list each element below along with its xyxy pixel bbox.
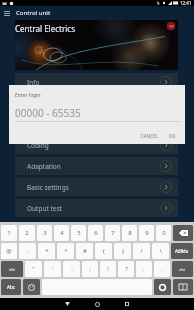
staticText: /	[140, 247, 143, 255]
staticText: Coding	[27, 141, 49, 150]
button[interactable]: #	[76, 243, 93, 259]
button[interactable]: Fault memory	[15, 94, 178, 112]
staticText: (	[103, 247, 105, 255]
staticText: \	[159, 247, 162, 255]
button[interactable]: (	[95, 243, 112, 259]
button[interactable]: OK	[166, 130, 179, 142]
button[interactable]: )	[114, 243, 131, 259]
staticText: Basic settings	[27, 183, 69, 192]
staticText: +	[64, 247, 68, 255]
button[interactable]: Symbols	[172, 261, 193, 277]
button[interactable]: 2	[19, 225, 35, 241]
staticText: ?	[125, 265, 128, 273]
staticText: ;	[89, 265, 91, 273]
staticText: =\<	[179, 267, 186, 272]
button[interactable]: "	[25, 261, 42, 277]
button[interactable]: '	[44, 261, 61, 277]
staticText: Adaptation	[27, 162, 61, 171]
staticText: "	[32, 265, 35, 273]
button[interactable]: 9	[139, 225, 154, 241]
button[interactable]: ,	[136, 261, 152, 277]
button[interactable]: =\<	[1, 261, 23, 277]
staticText: )	[122, 247, 124, 255]
button[interactable]: 7	[105, 225, 120, 241]
button[interactable]: +	[57, 243, 74, 259]
button[interactable]: Open navigation menu	[0, 6, 13, 20]
button[interactable]: Adaptation	[15, 157, 178, 175]
staticText: 00000 - 65535	[15, 106, 81, 120]
button[interactable]: Keyboard settings	[154, 279, 171, 295]
button[interactable]: Output test	[15, 199, 178, 217]
button[interactable]: Backspace	[173, 225, 193, 241]
button[interactable]: Info	[15, 73, 178, 91]
staticText: :	[71, 265, 73, 273]
staticText: 6	[94, 229, 98, 237]
staticText: .	[161, 265, 163, 273]
button[interactable]: 4	[54, 225, 69, 241]
staticText: 8	[128, 229, 132, 237]
button[interactable]: 1	[1, 225, 17, 241]
staticText: Output test	[27, 204, 62, 213]
button[interactable]: -	[19, 243, 36, 259]
staticText: OK	[169, 133, 176, 139]
staticText: ,	[143, 265, 145, 273]
button[interactable]: \	[152, 243, 169, 259]
staticText: Atlikta	[175, 248, 189, 254]
staticText: *	[45, 247, 49, 255]
staticText: 3	[43, 229, 47, 237]
staticText: CANCEL	[141, 133, 158, 139]
button[interactable]: Home	[82, 298, 112, 310]
button[interactable]: Back	[52, 298, 82, 310]
button[interactable]: 6	[88, 225, 103, 241]
staticText: Info	[27, 78, 40, 87]
button[interactable]: Switch keyboard	[173, 279, 193, 295]
button[interactable]: !	[100, 261, 116, 277]
staticText: Abc	[7, 284, 15, 290]
staticText: Central Electrics	[15, 23, 75, 34]
button[interactable]: ?	[118, 261, 134, 277]
button[interactable]: *	[38, 243, 55, 259]
staticText: 1	[7, 229, 11, 237]
staticText: Control unit	[16, 9, 51, 17]
button[interactable]: 5	[71, 225, 86, 241]
staticText: 5	[77, 229, 81, 237]
staticText: 4	[60, 229, 64, 237]
staticText: 7	[111, 229, 115, 237]
staticText: 12:41	[180, 0, 192, 6]
button[interactable]: Coding	[15, 136, 178, 154]
button[interactable]: /	[133, 243, 150, 259]
button[interactable]: .	[154, 261, 170, 277]
staticText: -	[27, 247, 29, 255]
button[interactable]: CANCEL	[138, 130, 161, 142]
button[interactable]: Emoji	[23, 279, 40, 295]
button[interactable]: :	[63, 261, 80, 277]
button[interactable]: 3	[37, 225, 52, 241]
button[interactable]: 0	[156, 225, 171, 241]
staticText: 0	[162, 229, 166, 237]
staticText: =\<	[9, 267, 16, 272]
staticText: 2	[25, 229, 29, 237]
staticText: #	[83, 247, 87, 255]
staticText: '	[52, 265, 54, 273]
button[interactable]: Fault warning	[167, 22, 175, 30]
staticText: @	[6, 247, 12, 255]
staticText: Enter login	[15, 92, 41, 99]
button[interactable]: Abc	[1, 279, 21, 295]
staticText: 9	[145, 229, 149, 237]
button[interactable]: Done	[171, 243, 193, 259]
staticText: Live data	[27, 120, 55, 129]
button[interactable]: Recent apps	[112, 298, 142, 310]
button[interactable]: @	[1, 243, 17, 259]
staticText: !	[107, 265, 109, 273]
button[interactable]: 8	[122, 225, 137, 241]
button[interactable]: Basic settings	[15, 178, 178, 196]
button[interactable]: ;	[82, 261, 98, 277]
button[interactable]: Live data	[15, 115, 178, 133]
